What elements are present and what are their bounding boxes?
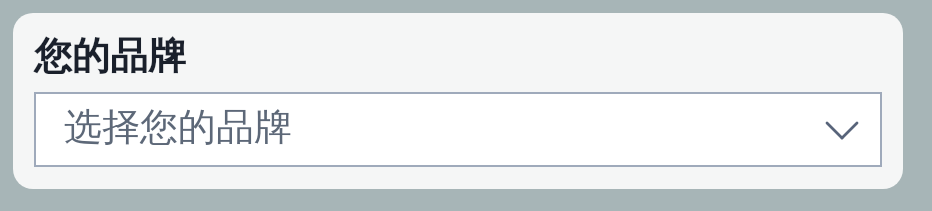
staticText: 您的品牌 [34,32,186,80]
staticText: 选择您的品牌 [64,103,292,151]
button[interactable]: 选择您的品牌 [34,92,882,167]
